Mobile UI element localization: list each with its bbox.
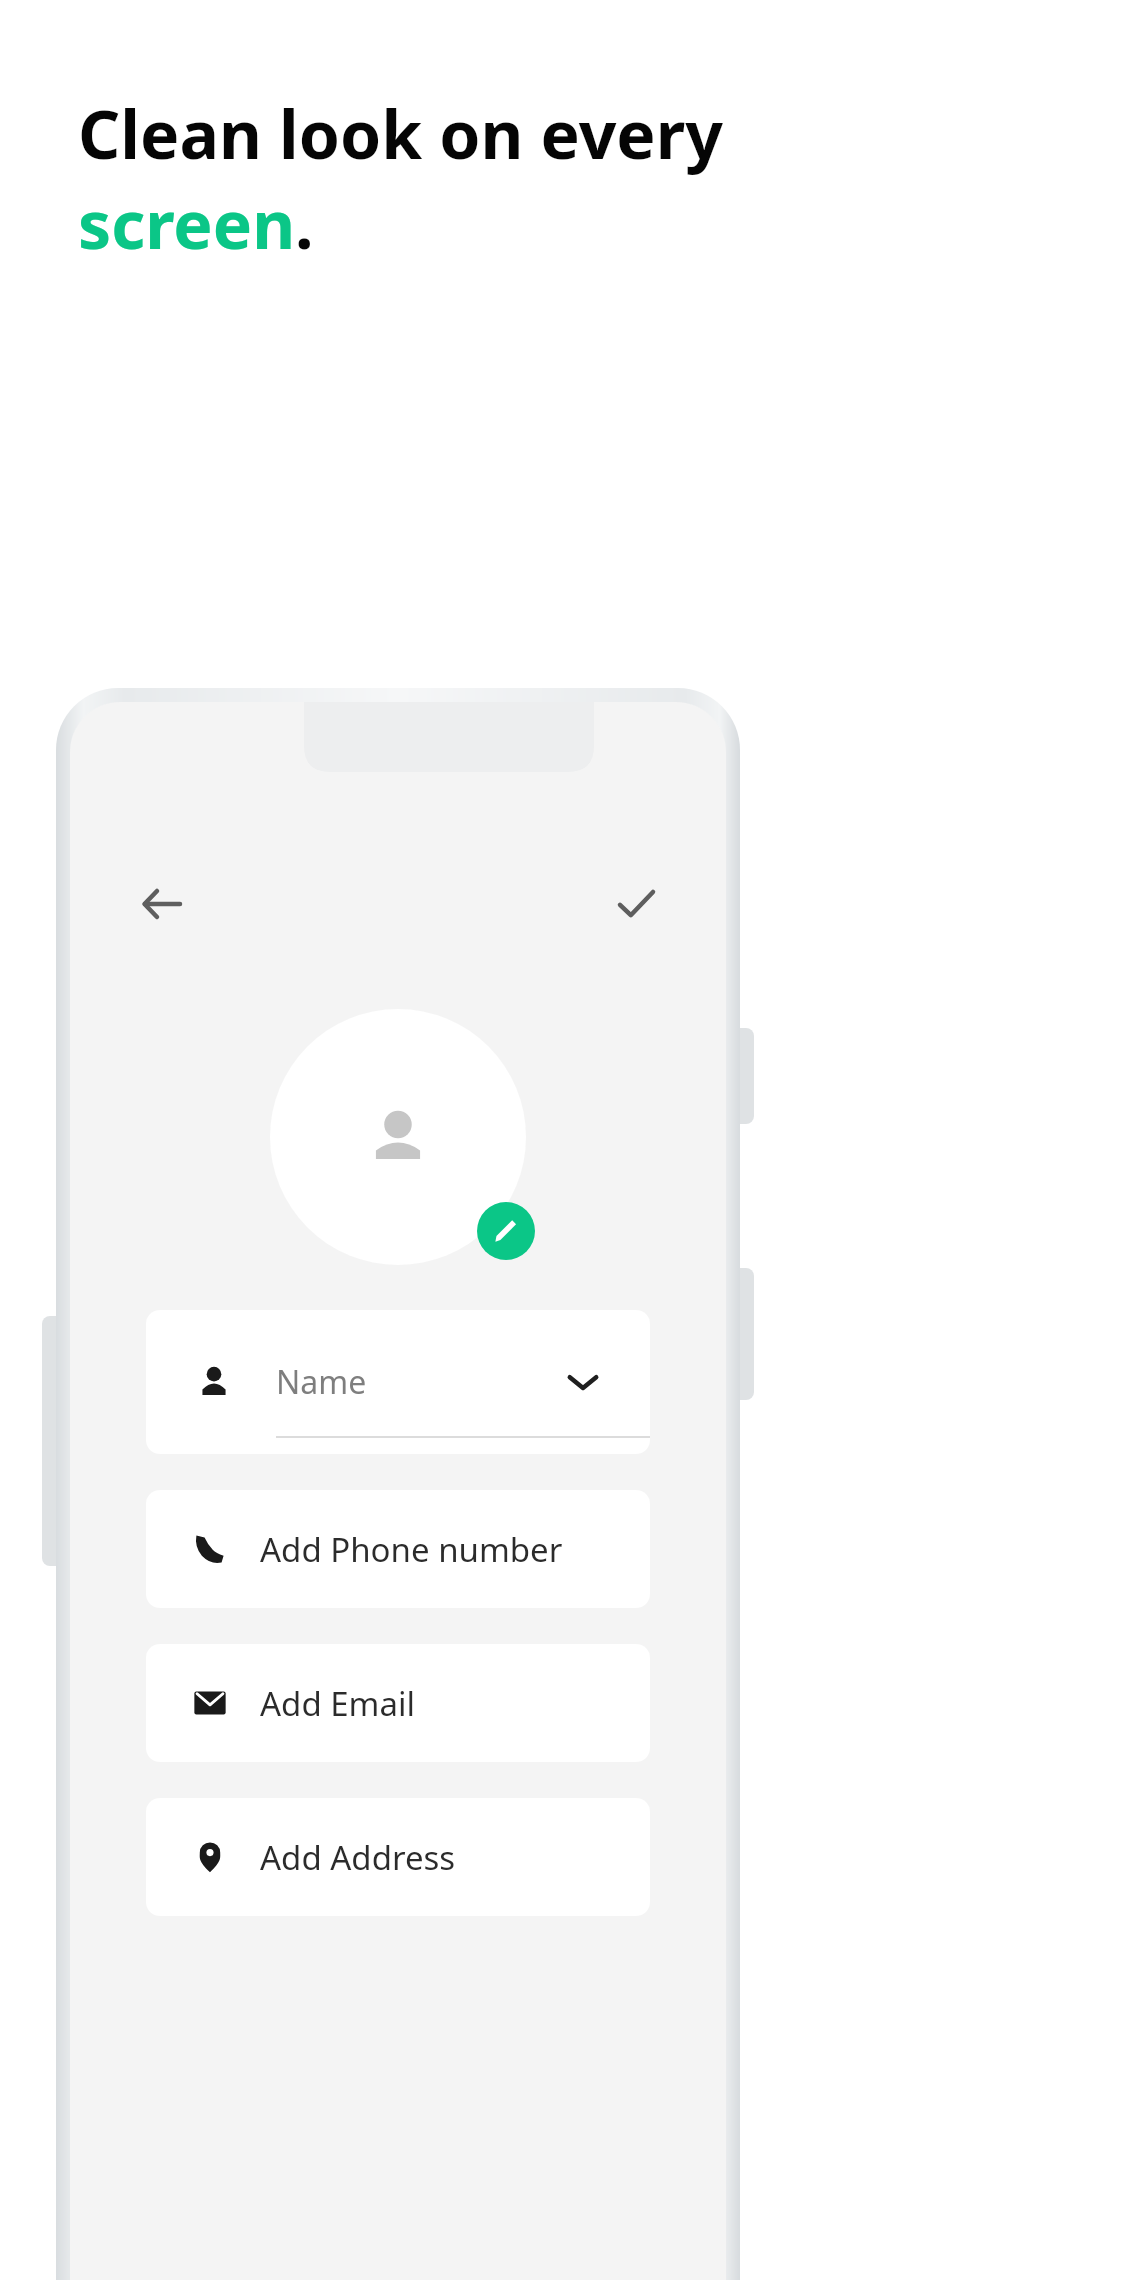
- staticText: screen.: [78, 178, 314, 268]
- button[interactable]: Add Phone number: [146, 1490, 650, 1608]
- button[interactable]: Edit photo: [477, 1202, 535, 1260]
- button[interactable]: Add Address: [146, 1798, 650, 1916]
- button[interactable]: Name: [146, 1310, 650, 1454]
- button[interactable]: Expand name: [560, 1359, 606, 1405]
- button[interactable]: Save: [598, 866, 674, 942]
- staticText: Name: [276, 1360, 367, 1404]
- button[interactable]: Profile photo: [270, 1009, 526, 1265]
- button[interactable]: Add Email: [146, 1644, 650, 1762]
- staticText: Add Address: [260, 1835, 456, 1880]
- button[interactable]: Back: [124, 866, 200, 942]
- staticText: Add Email: [260, 1681, 416, 1726]
- staticText: Clean look on every: [78, 88, 723, 178]
- staticText: Add Phone number: [260, 1527, 563, 1572]
